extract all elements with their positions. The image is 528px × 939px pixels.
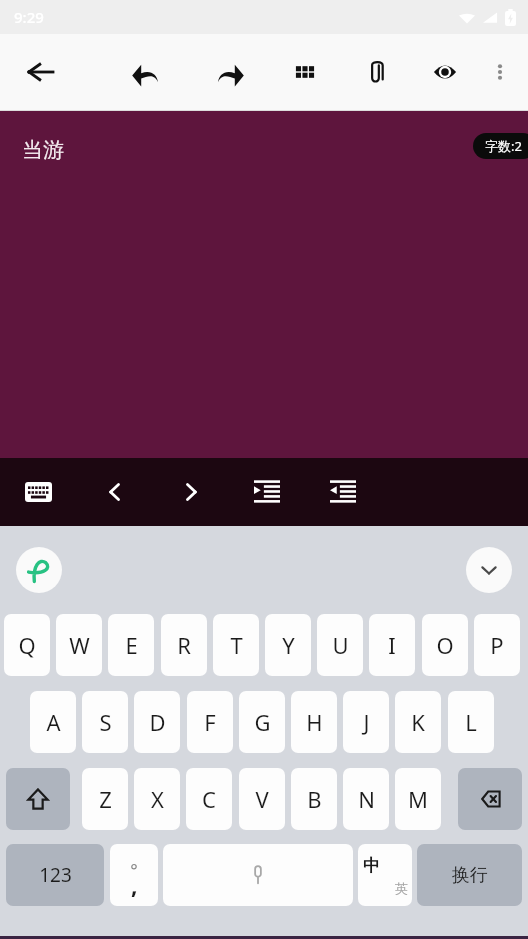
staticText: P [490, 630, 504, 660]
button[interactable]: C [186, 768, 232, 830]
button[interactable]: H [291, 691, 337, 753]
staticText: H [306, 707, 323, 737]
button[interactable]: K [395, 691, 441, 753]
button[interactable]: Switch Chinese English [358, 844, 412, 906]
staticText: V [255, 784, 269, 814]
staticText: 9:29 [14, 7, 44, 27]
button[interactable]: Redo [207, 49, 253, 95]
staticText: Q [18, 630, 36, 660]
staticText: S [99, 707, 112, 737]
staticText: 123 [39, 862, 72, 888]
button[interactable]: Space, voice input [163, 844, 353, 906]
staticText: X [151, 784, 164, 814]
button[interactable]: Next [169, 470, 213, 514]
staticText: Y [282, 630, 295, 660]
button[interactable]: More options [478, 50, 522, 94]
staticText: , [131, 869, 138, 900]
button[interactable]: 字数:2 [473, 133, 528, 159]
staticText: 英 [395, 880, 408, 896]
staticText: U [332, 630, 349, 660]
staticText: E [125, 630, 138, 660]
staticText: I [388, 630, 396, 660]
button[interactable]: A [30, 691, 76, 753]
button[interactable]: L [448, 691, 494, 753]
button[interactable]: Undo [123, 49, 169, 95]
button[interactable]: Z [82, 768, 128, 830]
button[interactable]: Attach file [353, 49, 399, 95]
button[interactable]: G [239, 691, 285, 753]
button[interactable]: V [239, 768, 285, 830]
button[interactable]: Y [265, 614, 311, 676]
button[interactable]: O [422, 614, 468, 676]
staticText: R [177, 630, 191, 660]
button[interactable]: W [56, 614, 102, 676]
button[interactable]: 123 [6, 844, 104, 906]
staticText: 中 [363, 855, 380, 876]
button[interactable]: Comma [110, 844, 158, 906]
button[interactable]: M [395, 768, 441, 830]
button[interactable]: N [343, 768, 389, 830]
button[interactable]: R [161, 614, 207, 676]
staticText: Z [99, 784, 112, 814]
button[interactable]: Input method [16, 547, 62, 593]
staticText: M [408, 784, 428, 814]
staticText: O [436, 630, 454, 660]
button[interactable]: Q [4, 614, 50, 676]
staticText: N [358, 784, 375, 814]
button[interactable]: U [317, 614, 363, 676]
staticText: W [69, 630, 90, 660]
staticText: 当游 [22, 137, 64, 163]
button[interactable]: F [187, 691, 233, 753]
button[interactable]: Back [18, 49, 64, 95]
staticText: D [149, 707, 166, 737]
staticText: K [411, 707, 425, 737]
button[interactable]: X [134, 768, 180, 830]
staticText: A [46, 707, 61, 737]
button[interactable]: S [82, 691, 128, 753]
staticText: 换行 [452, 864, 488, 887]
button[interactable]: Preview [422, 49, 468, 95]
staticText: G [254, 707, 271, 737]
button[interactable]: B [291, 768, 337, 830]
button[interactable]: Increase indent [245, 470, 289, 514]
button[interactable]: T [213, 614, 259, 676]
staticText: T [230, 630, 243, 660]
staticText: F [204, 707, 216, 737]
button[interactable]: Keyboard [16, 470, 60, 514]
staticText: C [202, 784, 216, 814]
button[interactable]: Shift [6, 768, 70, 830]
button[interactable]: E [108, 614, 154, 676]
button[interactable]: Table [282, 49, 328, 95]
button[interactable]: P [474, 614, 520, 676]
button[interactable]: Decrease indent [321, 470, 365, 514]
button[interactable]: I [369, 614, 415, 676]
button[interactable]: Previous [93, 470, 137, 514]
staticText: L [465, 707, 477, 737]
button[interactable]: Hide keyboard [466, 547, 512, 593]
staticText: 字数:2 [485, 137, 522, 155]
button[interactable]: Backspace [458, 768, 522, 830]
button[interactable]: 换行 [417, 844, 522, 906]
button[interactable]: J [343, 691, 389, 753]
button[interactable]: D [134, 691, 180, 753]
staticText: B [307, 784, 322, 814]
staticText: J [363, 707, 370, 737]
